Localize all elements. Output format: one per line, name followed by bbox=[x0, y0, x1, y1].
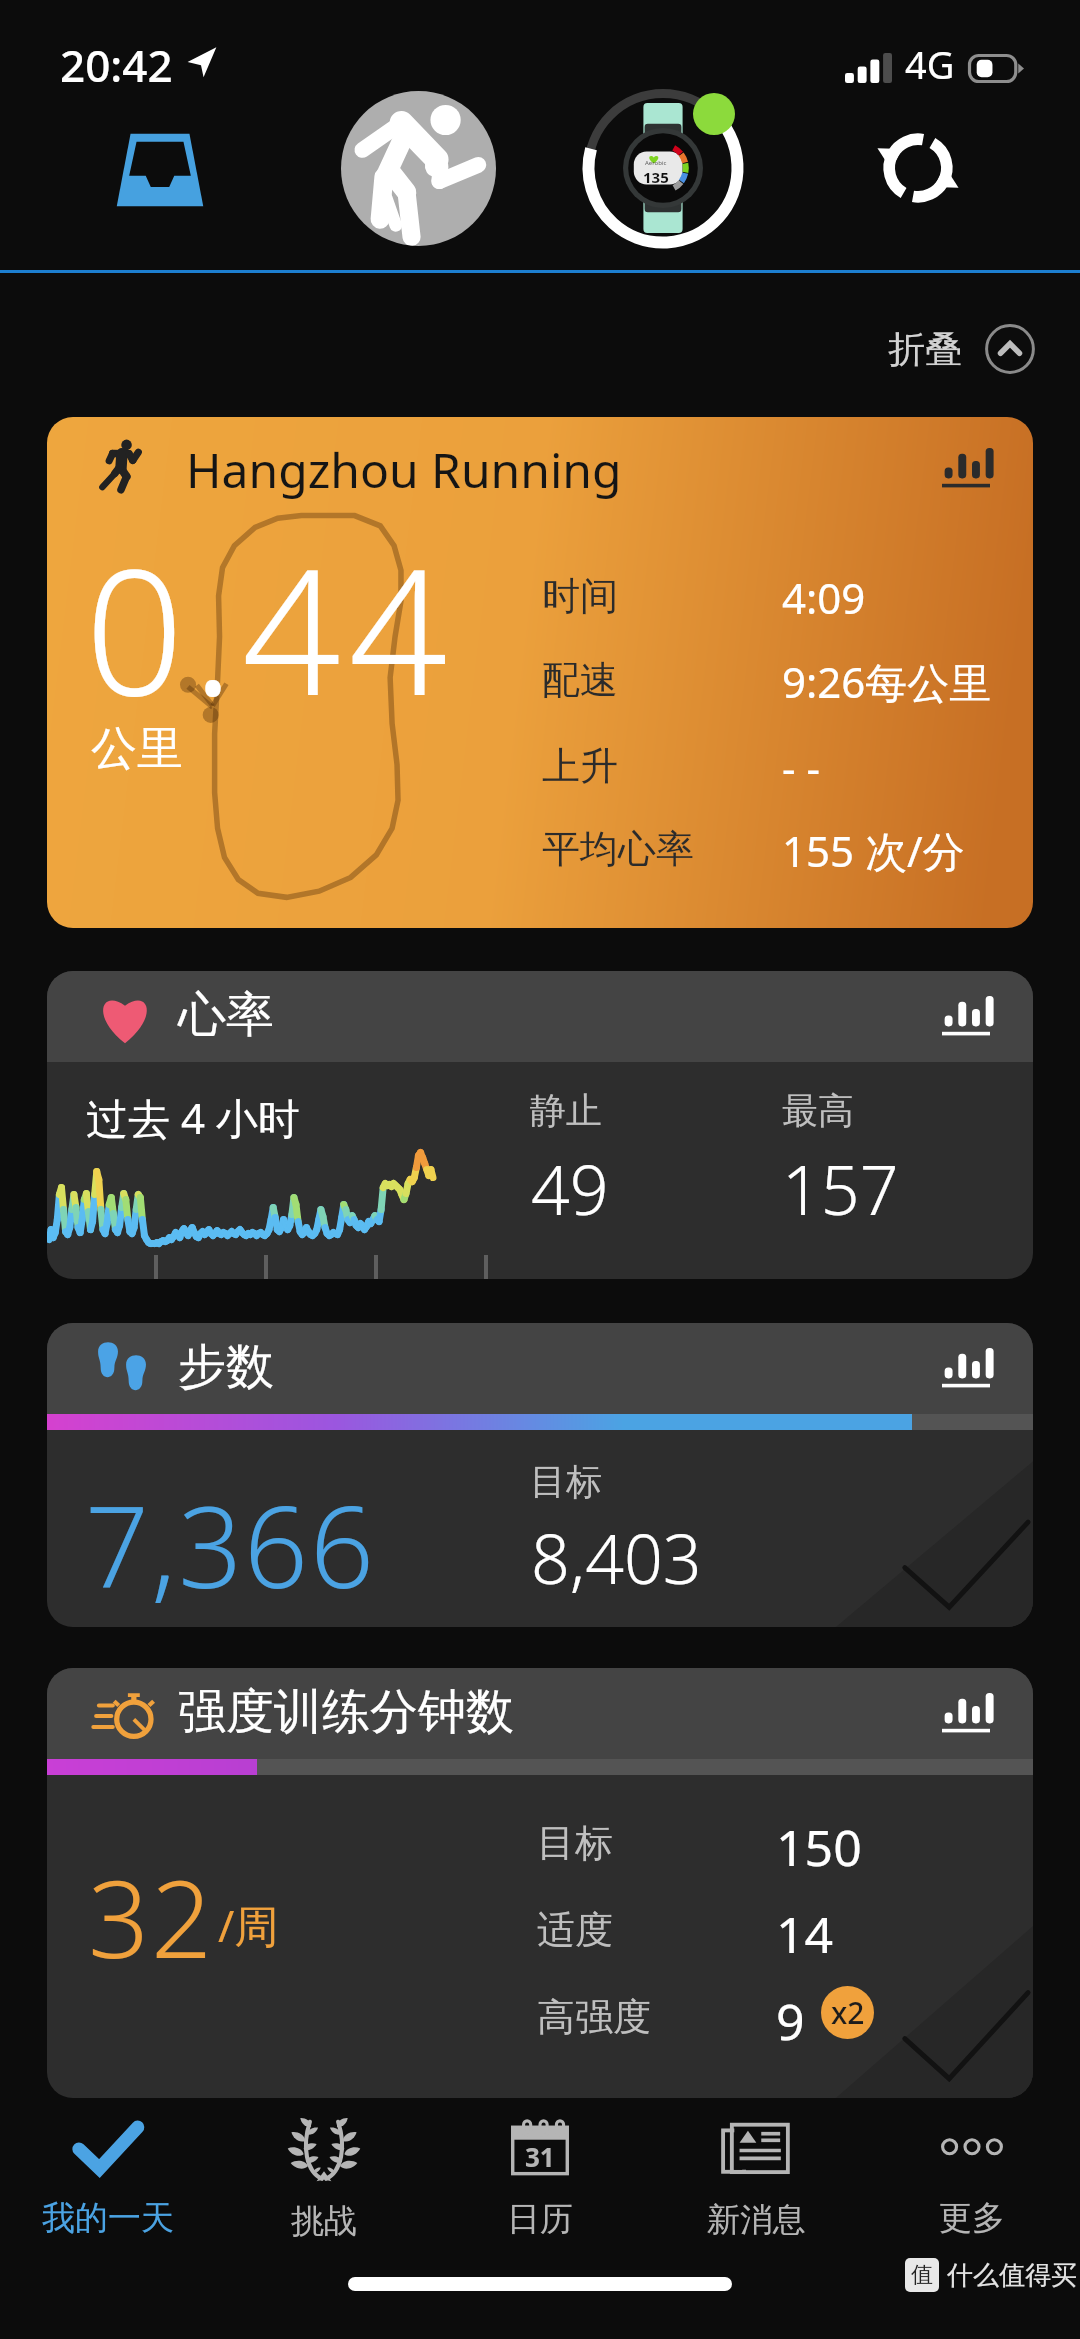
button[interactable]: 步数 bbox=[47, 1323, 1033, 1627]
staticText: 157 bbox=[782, 1142, 899, 1235]
staticText: 值 bbox=[911, 2261, 933, 2289]
staticText: 配速 bbox=[542, 656, 618, 704]
staticText: 上升 bbox=[542, 742, 618, 790]
button[interactable]: Inbox bbox=[110, 118, 210, 218]
staticText: 8,403 bbox=[531, 1511, 702, 1604]
staticText: Aerobic bbox=[645, 159, 667, 167]
button[interactable]: 强度训练分钟数 bbox=[47, 1668, 1033, 2098]
staticText: 日历 bbox=[507, 2198, 573, 2240]
staticText: 静止 bbox=[530, 1088, 602, 1133]
button[interactable]: 新消息 bbox=[648, 2100, 864, 2260]
staticText: 49 bbox=[531, 1142, 609, 1235]
staticText: 公里 bbox=[91, 720, 183, 778]
staticText: 20:42 bbox=[60, 35, 173, 95]
staticText: 7,366 bbox=[85, 1468, 377, 1621]
staticText: 最高 bbox=[782, 1088, 854, 1133]
staticText: 平均心率 bbox=[542, 825, 694, 873]
staticText: 155 次/分 bbox=[782, 822, 965, 879]
staticText: 挑战 bbox=[291, 2200, 357, 2242]
staticText: 目标 bbox=[530, 1459, 602, 1504]
staticText: Hangzhou Running bbox=[186, 437, 622, 502]
staticText: x2 bbox=[831, 1992, 865, 2033]
staticText: 135 bbox=[643, 167, 669, 187]
button[interactable]: Device battery bbox=[583, 88, 743, 248]
staticText: 折叠 bbox=[888, 326, 962, 373]
staticText: 14 bbox=[776, 1900, 834, 1968]
staticText: 150 bbox=[776, 1813, 862, 1881]
button[interactable]: 31 bbox=[432, 2100, 648, 2260]
staticText: 时间 bbox=[542, 572, 618, 620]
staticText: 32 bbox=[88, 1844, 215, 1990]
staticText: 9 bbox=[776, 1987, 805, 2055]
staticText: 适度 bbox=[537, 1906, 613, 1954]
button[interactable]: Sync bbox=[858, 108, 978, 228]
staticText: 步数 bbox=[178, 1337, 274, 1397]
staticText: /周 bbox=[218, 1895, 279, 1955]
staticText: - - bbox=[782, 739, 820, 796]
button[interactable]: 更多 bbox=[864, 2100, 1080, 2260]
staticText: 心率 bbox=[178, 985, 274, 1045]
staticText: 新消息 bbox=[707, 2199, 806, 2241]
button[interactable]: Activity profile bbox=[341, 91, 496, 246]
button[interactable]: Hangzhou Running bbox=[47, 417, 1033, 928]
staticText: 强度训练分钟数 bbox=[178, 1682, 514, 1742]
staticText: 9:26每公里 bbox=[782, 653, 992, 710]
staticText: 我的一天 bbox=[42, 2197, 174, 2239]
staticText: 过去 4 小时 bbox=[86, 1089, 300, 1146]
button[interactable]: 心率 bbox=[47, 971, 1033, 1279]
staticText: 4:09 bbox=[782, 569, 866, 626]
staticText: 什么值得买 bbox=[947, 2259, 1077, 2292]
button[interactable]: 折叠 bbox=[865, 310, 1035, 388]
staticText: 更多 bbox=[939, 2197, 1005, 2239]
staticText: 31 bbox=[525, 2139, 555, 2174]
button[interactable]: 我的一天 bbox=[0, 2100, 216, 2260]
staticText: 目标 bbox=[537, 1819, 613, 1867]
staticText: 4G bbox=[905, 38, 955, 90]
staticText: 0.44 bbox=[85, 510, 456, 746]
button[interactable]: 挑战 bbox=[216, 2100, 432, 2260]
staticText: 高强度 bbox=[537, 1993, 651, 2041]
